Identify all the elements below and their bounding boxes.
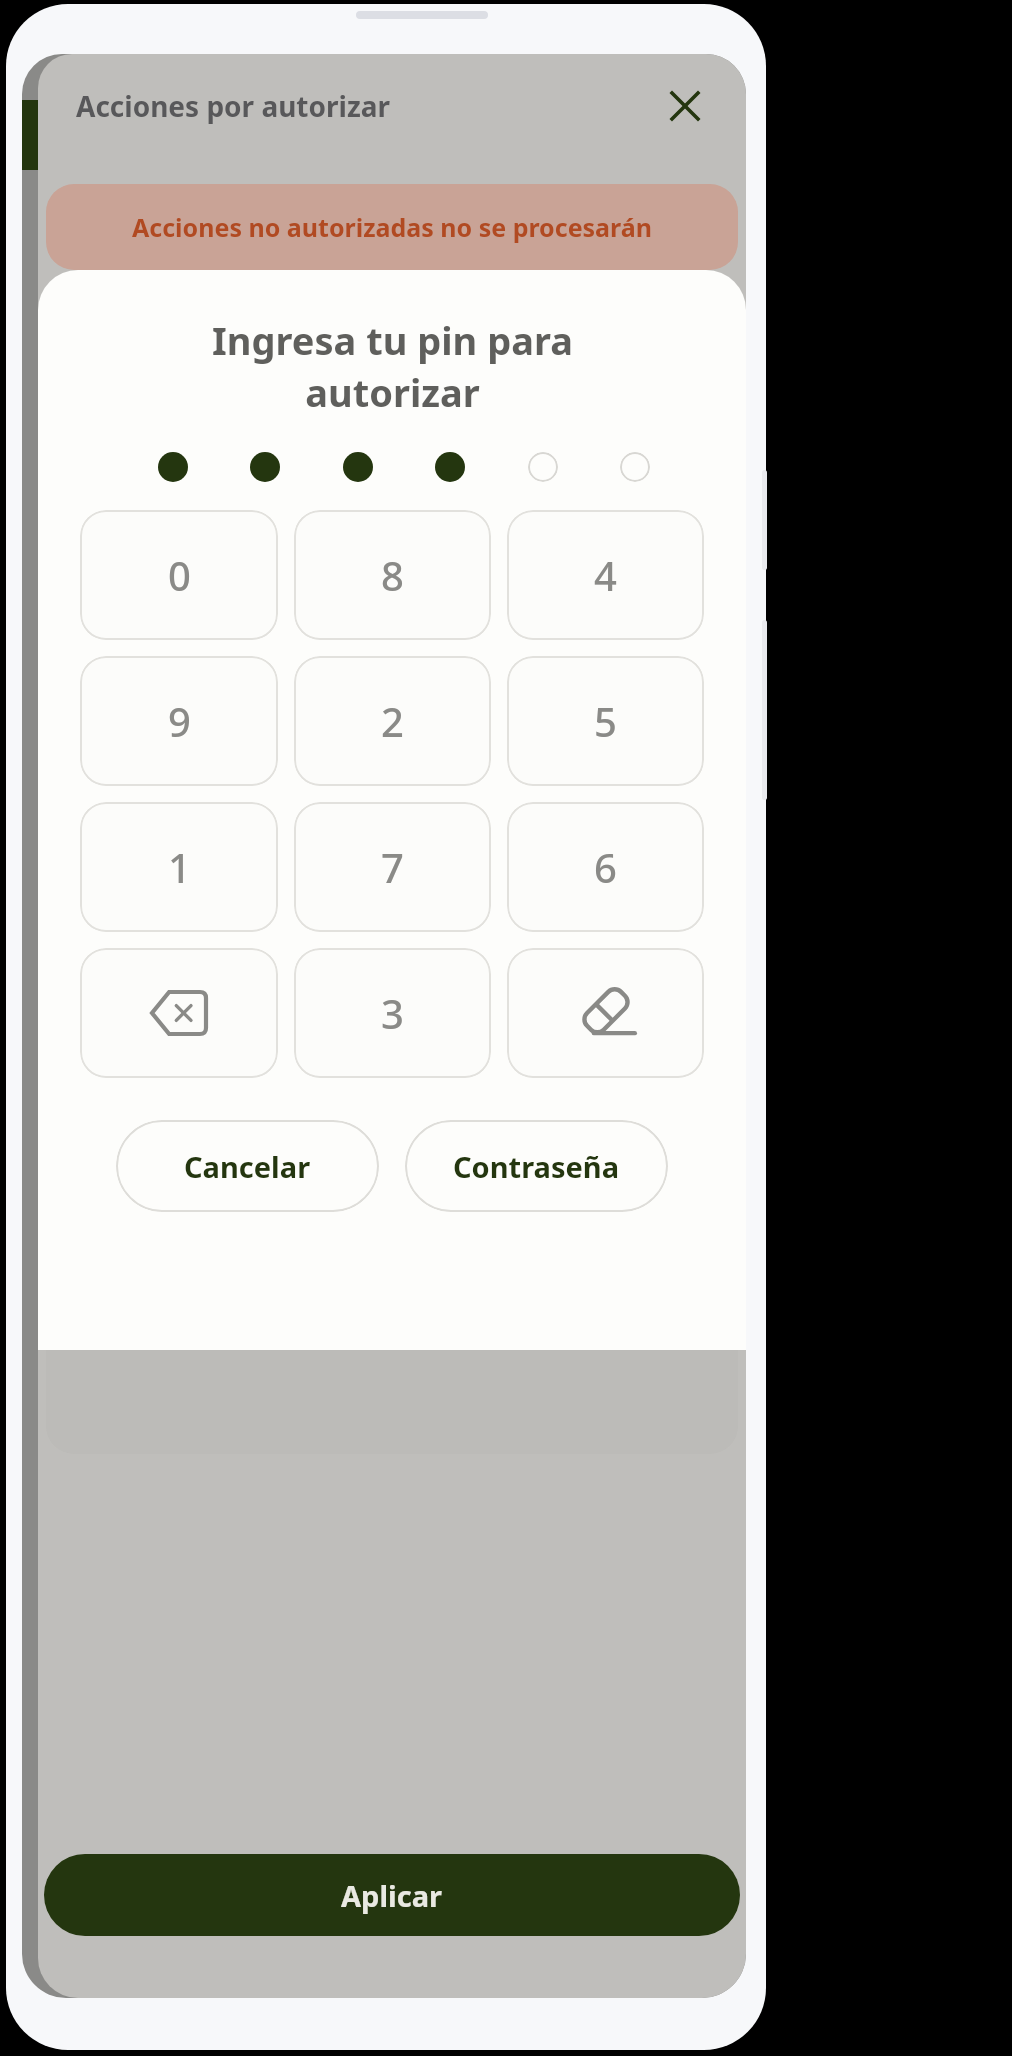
staticText: 9 [168,694,191,748]
button[interactable]: Aplicar [44,1854,740,1936]
staticText: 3 [381,986,404,1040]
staticText: Cancelar [184,1147,311,1186]
staticText: Aplicar [341,1876,443,1915]
button[interactable]: 7 [294,802,491,932]
button[interactable]: Cancelar [116,1120,379,1212]
staticText: Acciones por autorizar [76,87,390,125]
button[interactable]: 0 [80,510,278,640]
staticText: 7 [381,840,404,894]
staticText: 8 [381,548,404,602]
button[interactable]: Cerrar [662,83,708,129]
staticText: 5 [594,694,617,748]
staticText: 2 [381,694,404,748]
staticText: 6 [594,840,617,894]
staticText: 1 [168,840,191,894]
button[interactable]: 9 [80,656,278,786]
button[interactable]: 1 [80,802,278,932]
button[interactable]: 3 [294,948,491,1078]
staticText: Contraseña [453,1147,620,1186]
button[interactable]: 6 [507,802,704,932]
button[interactable]: 2 [294,656,491,786]
staticText: 4 [594,548,617,602]
staticText: 0 [168,548,191,602]
button[interactable]: Borrar [80,948,278,1078]
button[interactable]: 4 [507,510,704,640]
button[interactable]: Limpiar [507,948,704,1078]
button[interactable]: 5 [507,656,704,786]
button[interactable]: 8 [294,510,491,640]
button[interactable]: Contraseña [405,1120,668,1212]
staticText: Ingresa tu pin para autorizar [212,314,573,418]
staticText: Acciones no autorizadas no se procesarán [132,210,652,244]
